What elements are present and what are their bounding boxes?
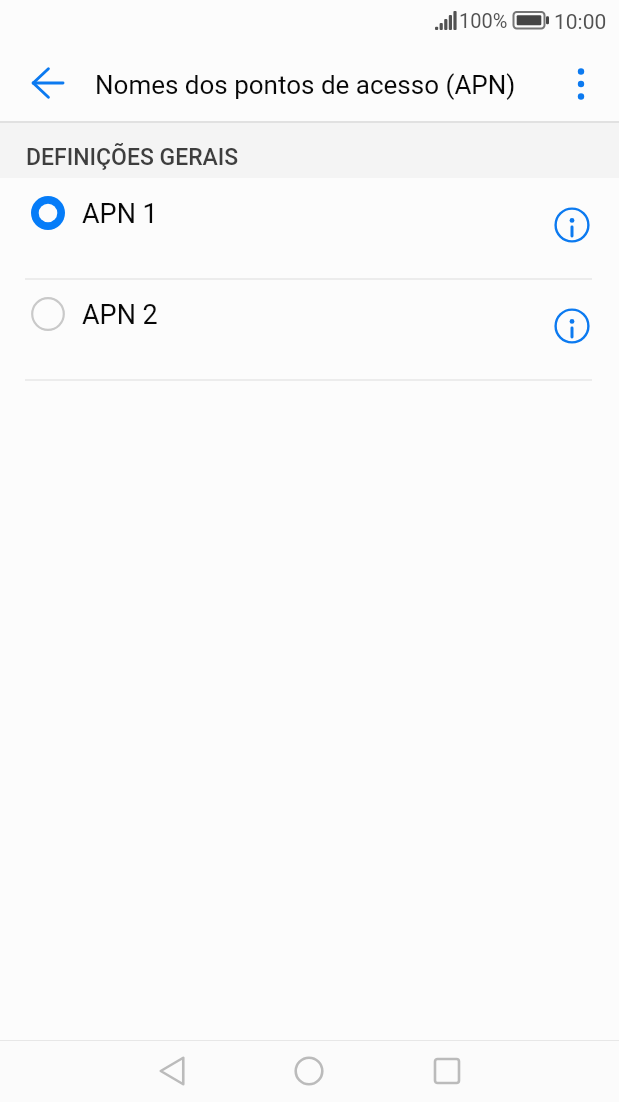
button[interactable]: Recent apps: [415, 1040, 479, 1102]
button[interactable]: Home: [277, 1040, 341, 1102]
staticText: APN 2: [82, 299, 158, 331]
button[interactable]: Back: [140, 1040, 204, 1102]
button[interactable]: APN details for APN 1: [542, 195, 602, 255]
staticText: APN 1: [82, 198, 158, 230]
button[interactable]: APN 1: [0, 178, 619, 277]
button[interactable]: More options: [549, 52, 613, 116]
staticText: 100%: [459, 9, 508, 32]
staticText: 10:00: [554, 10, 607, 35]
staticText: Nomes dos pontos de acesso (APN): [95, 70, 516, 100]
staticText: DEFINIÇÕES GERAIS: [26, 144, 239, 171]
button[interactable]: APN 2: [0, 279, 619, 378]
button[interactable]: APN details for APN 2: [542, 296, 602, 356]
button[interactable]: Back: [12, 47, 84, 119]
